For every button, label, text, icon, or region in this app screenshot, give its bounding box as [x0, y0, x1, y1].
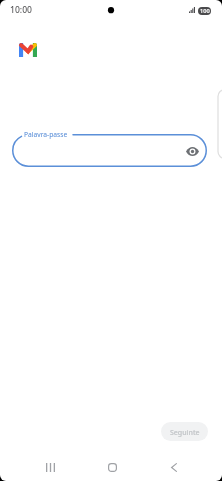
button[interactable]: Recentes	[31, 453, 69, 481]
button[interactable]: Mostrar palavra-passe	[181, 140, 203, 162]
staticText: 100	[200, 7, 210, 15]
staticText: 10:00	[10, 4, 33, 16]
button[interactable]: Voltar	[155, 453, 193, 481]
button[interactable]: Início	[93, 453, 131, 481]
button[interactable]: Seguinte	[161, 422, 208, 441]
staticText: Seguinte	[170, 428, 200, 438]
staticText: Palavra-passe	[24, 130, 68, 139]
button[interactable]: Palavra-passe	[12, 134, 207, 167]
